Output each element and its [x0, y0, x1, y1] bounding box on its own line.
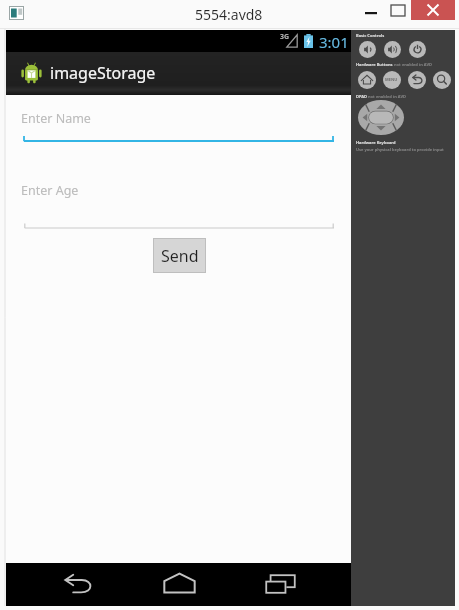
staticText: DPAD — [356, 94, 368, 99]
staticText: Hardware Buttons — [356, 62, 394, 67]
staticText: 3:01 — [319, 32, 349, 52]
button[interactable]: Recent apps — [265, 574, 296, 594]
staticText: MENU — [385, 77, 398, 82]
button[interactable]: Menu — [383, 71, 401, 89]
button[interactable]: Search — [433, 71, 451, 89]
button[interactable]: Back — [62, 574, 95, 594]
button[interactable]: Volume up — [384, 41, 401, 58]
staticText: Enter Age — [21, 182, 79, 199]
button[interactable]: Volume down — [359, 41, 376, 58]
staticText: not enabled in AVD — [368, 94, 406, 99]
staticText: 3G — [280, 32, 290, 42]
staticText: Use your physical keyboard to provide in… — [356, 147, 444, 152]
button[interactable]: Close — [411, 0, 455, 20]
staticText: imageStorage — [50, 62, 156, 84]
staticText: Basic Controls — [356, 33, 385, 38]
button[interactable]: Back — [408, 71, 426, 89]
button[interactable]: Home — [163, 573, 196, 593]
button[interactable]: Maximize — [385, 0, 411, 20]
staticText: 5554:avd8 — [195, 5, 263, 24]
staticText: not enabled in AVD — [394, 62, 432, 67]
staticText: Hardware Keyboard — [356, 140, 396, 145]
button[interactable]: Power — [409, 41, 426, 58]
staticText: Send — [161, 245, 199, 267]
staticText: Enter Name — [21, 110, 91, 127]
button[interactable]: D-pad — [358, 100, 404, 135]
button[interactable]: Minimize — [357, 0, 385, 20]
button[interactable]: Home — [358, 71, 376, 89]
button[interactable]: imageStorage — [6, 52, 351, 95]
button[interactable]: Send — [153, 238, 206, 273]
